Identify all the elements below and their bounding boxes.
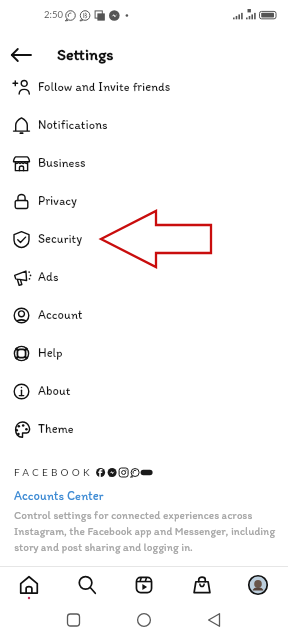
staticText: Notifications — [38, 117, 108, 132]
button[interactable]: Follow and Invite friends — [0, 68, 288, 106]
button[interactable]: Shop — [185, 568, 219, 602]
button[interactable]: Back — [4, 38, 38, 72]
button[interactable]: Home — [12, 568, 46, 602]
staticText: Security — [38, 231, 83, 246]
staticText: Control settings for connected experienc… — [14, 508, 277, 553]
button[interactable]: Notifications — [0, 106, 288, 144]
staticText: About — [38, 383, 71, 398]
staticText: Privacy — [38, 193, 77, 208]
staticText: Account — [38, 307, 83, 322]
staticText: Help — [38, 345, 63, 360]
button[interactable]: About — [0, 372, 288, 410]
staticText: Theme — [38, 421, 74, 436]
staticText: Follow and Invite friends — [38, 79, 171, 94]
button[interactable]: Reels — [127, 568, 161, 602]
button[interactable]: Ads — [0, 258, 288, 296]
button[interactable]: Security — [0, 220, 288, 258]
staticText: FACEBOOK — [14, 466, 93, 478]
button[interactable]: Search — [70, 568, 104, 602]
staticText: Ads — [38, 269, 59, 284]
staticText: Settings — [57, 45, 114, 64]
button[interactable]: Profile — [241, 568, 275, 602]
button[interactable]: Help — [0, 334, 288, 372]
staticText: Business — [38, 155, 86, 170]
button[interactable]: Business — [0, 144, 288, 182]
button[interactable]: Privacy — [0, 182, 288, 220]
button[interactable]: Account — [0, 296, 288, 334]
button[interactable]: Accounts Center — [14, 488, 104, 503]
button[interactable]: Theme — [0, 410, 288, 448]
staticText: 2:50 — [44, 9, 63, 20]
